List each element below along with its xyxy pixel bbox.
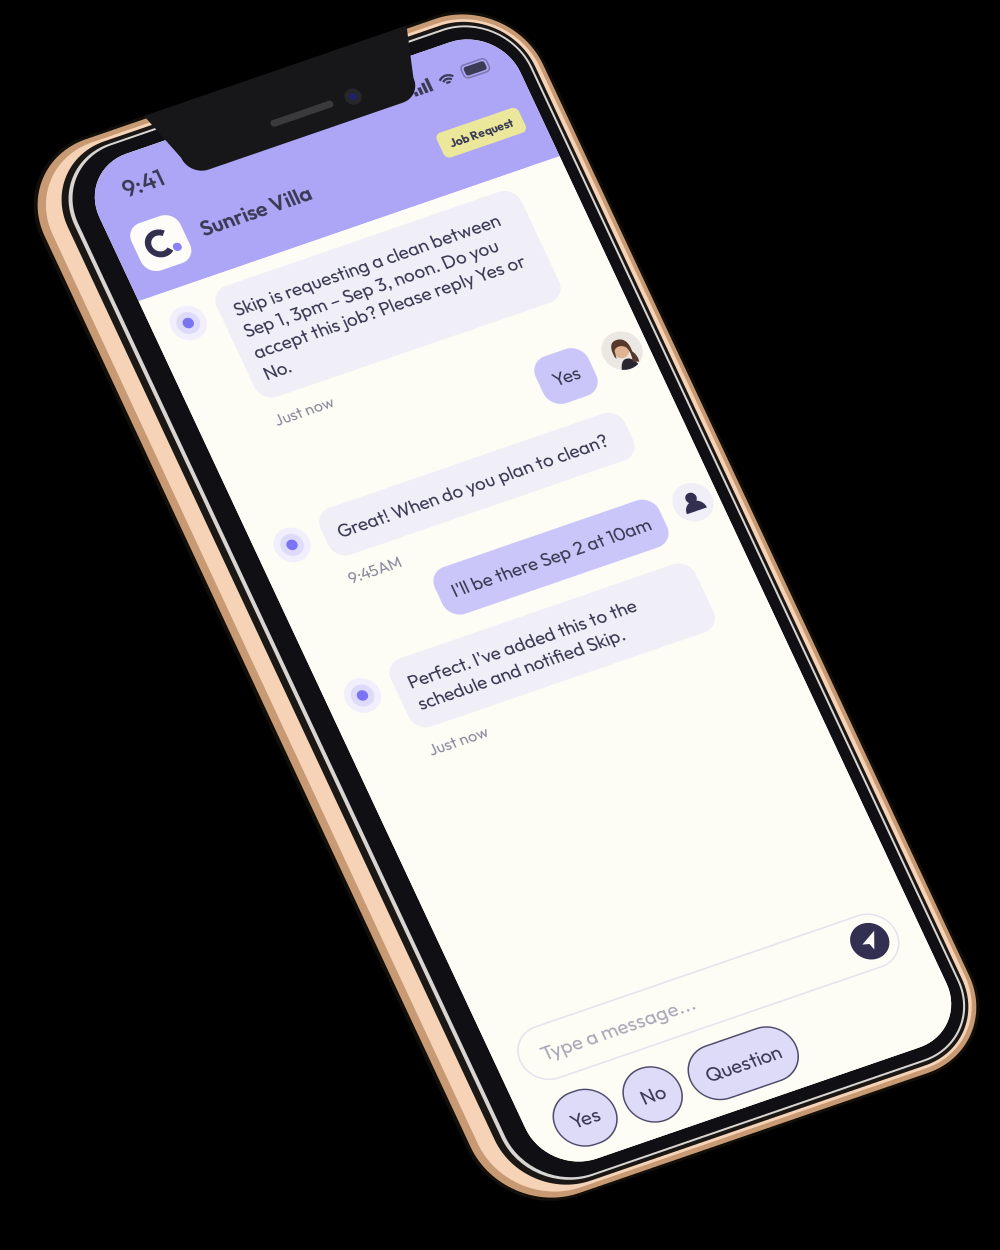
staticText: Perfect. I've added this to the schedule…	[83, 583, 324, 630]
staticText: Sunrise Villa	[87, 83, 204, 110]
staticText: Skip is requesting a clean between Sep 1…	[83, 172, 370, 266]
staticText: Just now	[73, 292, 135, 312]
staticText: Great! When do you plan to clean?	[83, 417, 368, 440]
staticText: I'll be there Sep 2 at 10am	[162, 511, 372, 534]
staticText: Job Request	[351, 89, 418, 104]
button[interactable]: Job Request	[341, 83, 428, 110]
button[interactable]: Send message	[375, 973, 413, 1011]
